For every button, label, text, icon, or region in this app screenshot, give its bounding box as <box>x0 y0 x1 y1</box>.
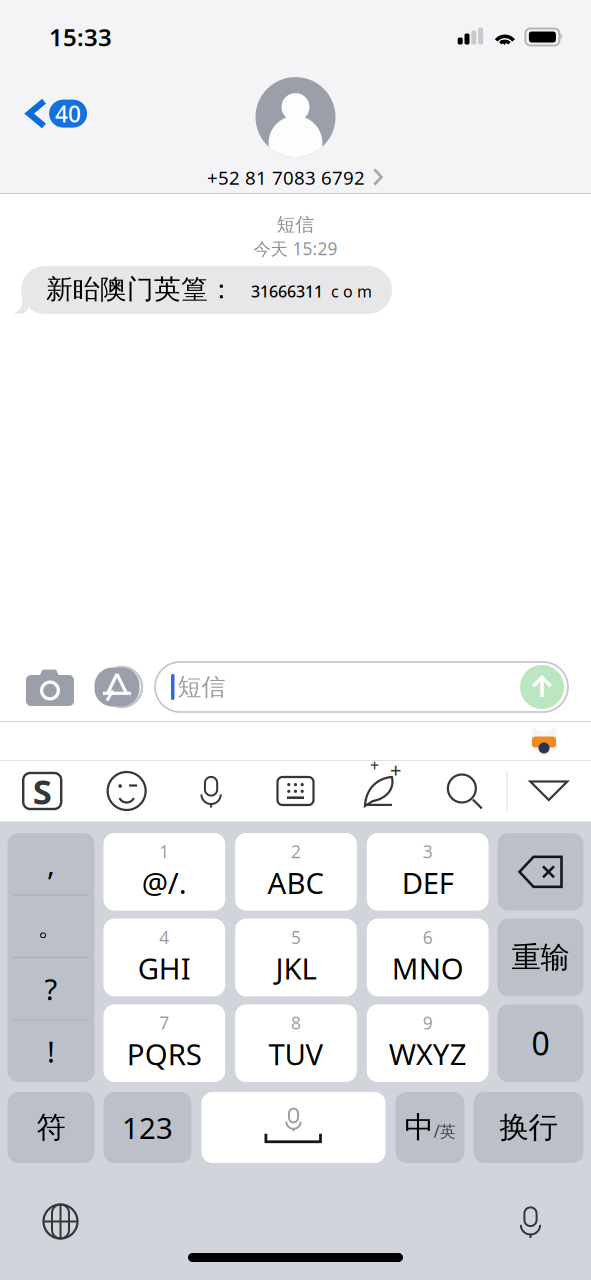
button[interactable]: Sticker <box>528 725 560 757</box>
button[interactable]: Dictation <box>513 1203 547 1240</box>
button[interactable]: , <box>7 833 94 894</box>
staticText: + <box>390 756 401 783</box>
button[interactable]: Voice <box>169 761 253 821</box>
button[interactable]: 0 <box>497 1004 583 1082</box>
button[interactable]: 8 <box>235 1004 357 1082</box>
staticText: 中 <box>404 1109 433 1145</box>
staticText: 9 <box>423 1011 433 1034</box>
staticText: 0 <box>531 1022 549 1064</box>
staticText: , <box>47 844 55 883</box>
staticText: GHI <box>138 949 191 988</box>
staticText: 重输 <box>511 939 569 975</box>
staticText: 1 <box>159 840 169 863</box>
staticText: 短信 <box>276 213 314 236</box>
button[interactable]: ! <box>7 1020 94 1082</box>
button[interactable]: 4 <box>103 919 225 996</box>
staticText: MNO <box>392 949 464 988</box>
staticText: 英 <box>439 1122 455 1142</box>
button[interactable]: Apps <box>87 659 147 715</box>
staticText: 今天 15:29 <box>253 237 337 260</box>
button[interactable]: 。 <box>7 895 94 957</box>
staticText: 4 <box>159 926 169 949</box>
staticText: 3 <box>423 840 433 863</box>
button[interactable]: 2 <box>235 833 357 911</box>
staticText: 2 <box>291 840 301 863</box>
staticText: +52 81 7083 6792 <box>207 165 365 190</box>
staticText: 123 <box>122 1108 173 1147</box>
staticText: + <box>370 755 379 776</box>
staticText: 7 <box>159 1011 169 1034</box>
button[interactable]: Sogou <box>0 761 84 821</box>
button[interactable]: 重输 <box>497 919 583 996</box>
button[interactable]: Emoji <box>84 761 169 821</box>
staticText: 新眙隩门英篁： <box>46 273 235 306</box>
staticText: ABC <box>267 863 324 902</box>
staticText: WXYZ <box>389 1034 467 1073</box>
button[interactable]: 换行 <box>473 1092 583 1163</box>
staticText: 8 <box>291 1011 301 1034</box>
button[interactable]: ? <box>7 958 94 1019</box>
staticText: S <box>33 768 52 814</box>
button[interactable]: 5 <box>235 919 357 996</box>
button[interactable]: Switch keyboard <box>41 1202 79 1240</box>
button[interactable]: 123 <box>103 1092 191 1163</box>
button[interactable]: Space <box>201 1092 385 1163</box>
staticText: 换行 <box>499 1109 557 1145</box>
staticText: 40 <box>55 99 81 129</box>
staticText: / <box>433 1119 439 1142</box>
button[interactable]: 7 <box>103 1004 225 1082</box>
button[interactable]: 6 <box>367 919 488 996</box>
staticText: 符 <box>36 1109 65 1145</box>
button[interactable]: 符 <box>7 1092 94 1163</box>
button[interactable]: Collapse <box>507 761 591 821</box>
staticText: 15:33 <box>49 21 112 53</box>
staticText: 5 <box>291 926 301 949</box>
button[interactable]: 40 <box>0 84 103 143</box>
button[interactable]: Search <box>422 761 506 821</box>
button[interactable]: 1 <box>103 833 225 911</box>
staticText: @/. <box>142 863 187 902</box>
button[interactable]: Keyboard <box>253 761 338 821</box>
staticText: PQRS <box>127 1034 202 1073</box>
staticText: DEF <box>402 863 454 902</box>
button[interactable]: Handwriting <box>338 761 422 821</box>
staticText: 31666311 <box>251 281 323 302</box>
staticText: c o m <box>331 281 372 302</box>
staticText: JKL <box>275 949 316 988</box>
staticText: 短信 <box>177 672 225 702</box>
button[interactable]: 9 <box>367 1004 488 1082</box>
staticText: TUV <box>268 1034 323 1073</box>
staticText: 6 <box>423 926 433 949</box>
button[interactable]: Send <box>519 664 565 710</box>
button[interactable]: 3 <box>367 833 488 911</box>
button[interactable]: 中 <box>395 1092 464 1163</box>
button[interactable]: Camera <box>13 658 87 716</box>
staticText: ? <box>44 969 57 1008</box>
staticText: ! <box>47 1032 55 1071</box>
staticText: 。 <box>37 910 64 943</box>
button[interactable]: Delete <box>497 833 583 911</box>
